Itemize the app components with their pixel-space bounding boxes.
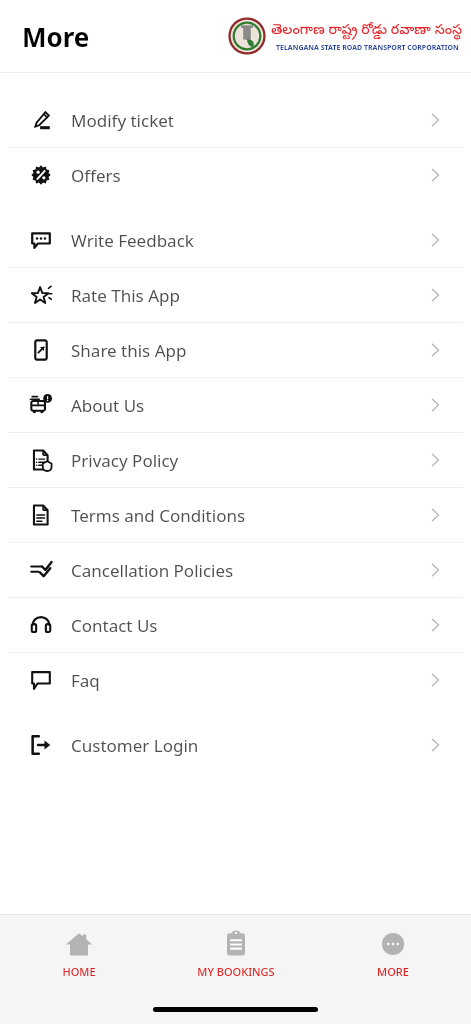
button[interactable]: Offers <box>8 148 463 202</box>
button[interactable]: Contact Us <box>8 598 463 652</box>
staticText: Rate This App <box>71 284 180 307</box>
staticText: MY BOOKINGS <box>197 964 275 979</box>
button[interactable]: Rate This App <box>8 268 463 322</box>
button[interactable]: MORE <box>314 923 471 985</box>
button[interactable]: Faq <box>8 653 463 707</box>
staticText: More <box>22 19 90 54</box>
button[interactable]: Share this App <box>8 323 463 377</box>
staticText: MORE <box>377 964 409 979</box>
staticText: Faq <box>71 669 100 692</box>
button[interactable]: Terms and Conditions <box>8 488 463 542</box>
button[interactable]: HOME <box>0 923 157 985</box>
button[interactable]: Cancellation Policies <box>8 543 463 597</box>
staticText: Contact Us <box>71 614 158 637</box>
staticText: TELANGANA STATE ROAD TRANSPORT CORPORATI… <box>276 43 459 53</box>
button[interactable]: Write Feedback <box>8 213 463 267</box>
staticText: Modify ticket <box>71 109 174 132</box>
button[interactable]: MY BOOKINGS <box>157 923 314 985</box>
staticText: Terms and Conditions <box>71 504 246 527</box>
button[interactable]: Customer Login <box>8 718 463 772</box>
button[interactable]: About Us <box>8 378 463 432</box>
button[interactable]: Modify ticket <box>8 93 463 147</box>
staticText: HOME <box>62 964 96 979</box>
staticText: Privacy Policy <box>71 449 179 472</box>
button[interactable]: Privacy Policy <box>8 433 463 487</box>
staticText: తెలంగాణ రాష్ట్ర రోడ్డు రవాణా సంస్థ <box>271 19 463 41</box>
staticText: Write Feedback <box>71 229 194 252</box>
staticText: About Us <box>71 394 145 417</box>
staticText: Customer Login <box>71 734 199 757</box>
staticText: Offers <box>71 164 121 187</box>
staticText: Cancellation Policies <box>71 559 234 582</box>
staticText: Share this App <box>71 339 187 362</box>
